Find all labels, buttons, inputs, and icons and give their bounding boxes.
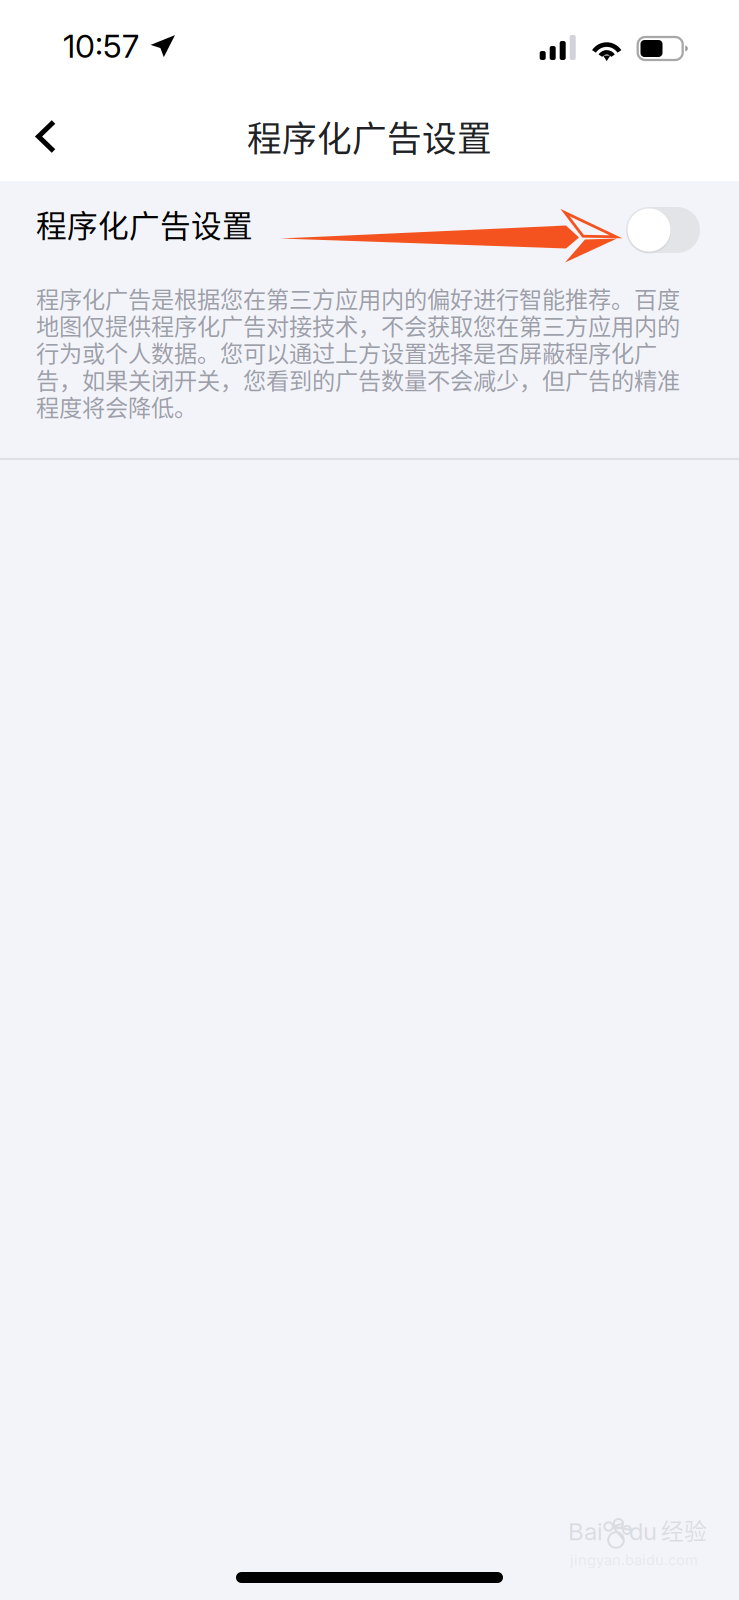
staticText: du xyxy=(629,1517,657,1546)
staticText: 经验 xyxy=(661,1513,707,1546)
staticText: 10:57 xyxy=(63,27,139,65)
staticText: 程序化广告设置 xyxy=(36,202,253,246)
button[interactable]: Back xyxy=(14,100,78,172)
staticText: 程序化广告是根据您在第三方应用内的偏好进行智能推荐。百度地图仅提供程序化广告对接… xyxy=(36,281,680,423)
staticText: jingyan.baidu.com xyxy=(570,1551,698,1569)
staticText: Bai xyxy=(568,1517,603,1546)
button[interactable]: 程序化广告设置 xyxy=(0,181,739,267)
staticText: 程序化广告设置 xyxy=(247,111,492,162)
